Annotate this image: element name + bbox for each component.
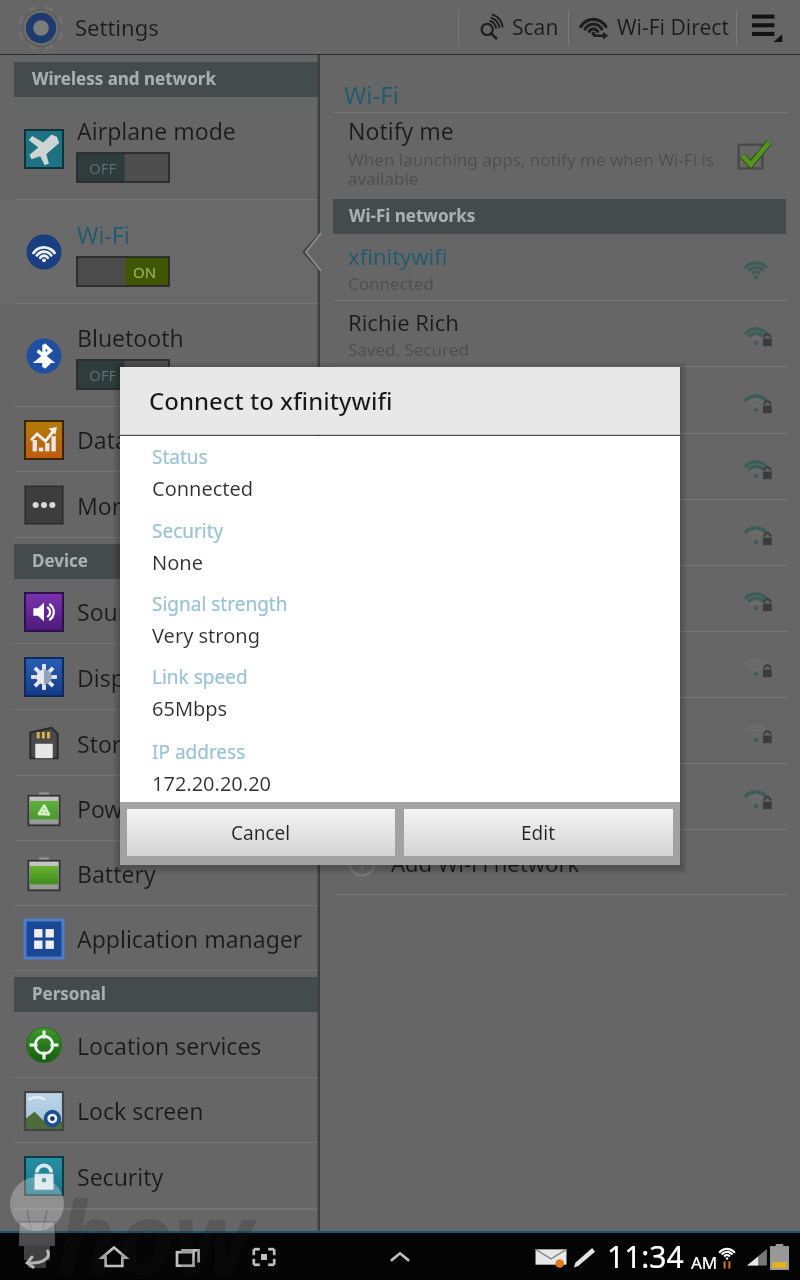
button[interactable]: linksys_01 [320,632,800,698]
staticText: how [56,1168,252,1280]
button[interactable]: OFF [77,153,169,182]
staticText: Settings [75,12,159,42]
staticText: Richie Rich [348,307,459,337]
staticText: Wi-Fi [77,219,130,250]
staticText: IP address [152,739,246,765]
button[interactable]: xfinitywifi [320,234,800,301]
staticText: Wireless and network [32,67,216,90]
staticText: Signal strength [152,591,288,617]
button[interactable]: Storage [0,710,320,776]
button[interactable]: More settings [0,472,320,538]
button[interactable]: Wi-Fi [0,200,320,304]
staticText: Link speed [152,664,248,690]
button[interactable]: Bluetooth [0,304,320,407]
button[interactable]: Data usage [0,407,320,472]
staticText: Connect to xfinitywifi [149,384,393,417]
button[interactable]: Home [91,1233,137,1280]
button[interactable]: Scan [468,0,568,55]
staticText: Wi-Fi [344,78,399,106]
button[interactable]: Wi-Fi Direct [572,0,736,55]
staticText: Security [152,518,224,544]
staticText: Connected [152,475,254,502]
button[interactable]: HOME-AB21 [320,698,800,764]
button[interactable]: Recents [166,1233,212,1280]
button[interactable]: Cancel [127,809,395,856]
button[interactable]: Display [0,644,320,710]
button[interactable]: MySpectrumWiFi [320,764,800,830]
staticText: Add Wi-Fi network [391,848,580,878]
staticText: Secured [348,801,413,824]
staticText: Very strong [152,622,260,649]
staticText: Security [77,1161,164,1192]
button[interactable]: HOME-E0D2 [320,367,800,434]
staticText: 172.20.20.20 [152,770,272,797]
staticText: Display [77,662,156,693]
staticText: Scan [512,13,559,42]
staticText: Edit [521,820,556,846]
button[interactable]: Richie Rich [320,301,800,367]
button[interactable]: xfinitywifi [320,434,800,500]
staticText: More settings [77,490,226,521]
button[interactable]: Back [15,1233,61,1280]
button[interactable]: HOME-1234 [320,500,800,566]
staticText: When launching apps, notify me when Wi-F… [348,148,728,190]
button[interactable]: Add Wi-Fi network [320,830,800,895]
staticText: OFF [89,158,117,178]
button[interactable]: NETGEAR43 [320,566,800,632]
button[interactable]: ON [77,257,169,286]
button[interactable]: Location services [0,1012,320,1078]
staticText: Location services [77,1030,262,1061]
staticText: Status [152,444,208,470]
button[interactable]: Show notifications [377,1233,423,1280]
staticText: 11:34 [607,1236,684,1277]
staticText: Data usage [77,424,200,455]
staticText: 65Mbps [152,695,228,722]
staticText: Connected [348,272,434,295]
button[interactable]: Power saving mode [0,776,320,841]
button[interactable]: More options [737,0,800,55]
button[interactable]: Notify me [320,112,800,198]
staticText: Battery [77,858,156,889]
staticText: Application manager [77,923,303,954]
button[interactable]: Battery [0,841,320,906]
button[interactable]: Screenshot [241,1233,287,1280]
button[interactable]: Application manager [0,906,320,971]
staticText: Lock screen [77,1095,204,1126]
button[interactable]: Edit [404,809,673,856]
staticText: Sound [77,596,147,627]
staticText: OFF [89,365,117,385]
staticText: Storage [77,728,161,759]
button[interactable]: Security [0,1143,320,1209]
button[interactable]: OFF [77,360,169,389]
staticText: Wi-Fi networks [349,204,476,227]
button[interactable]: Lock screen [0,1078,320,1143]
staticText: Notify me [348,115,454,146]
staticText: xfinitywifi [348,241,448,271]
button[interactable]: Airplane mode [0,97,320,200]
button[interactable]: Sound [0,579,320,644]
staticText: Cancel [231,820,291,846]
staticText: Bluetooth [77,322,184,353]
staticText: Saved, Secured [348,338,469,361]
staticText: ON [133,262,157,282]
staticText: HOME-E0D2 [348,374,475,404]
staticText: None [152,549,203,576]
staticText: Wi-Fi Direct [617,13,729,42]
staticText: AM [691,1251,718,1274]
staticText: Device [32,549,88,572]
button[interactable]: Settings [10,0,171,55]
staticText: Power saving mode [77,793,290,824]
staticText: Secured [348,405,413,428]
staticText: Personal [32,982,106,1005]
staticText: Airplane mode [77,115,236,146]
